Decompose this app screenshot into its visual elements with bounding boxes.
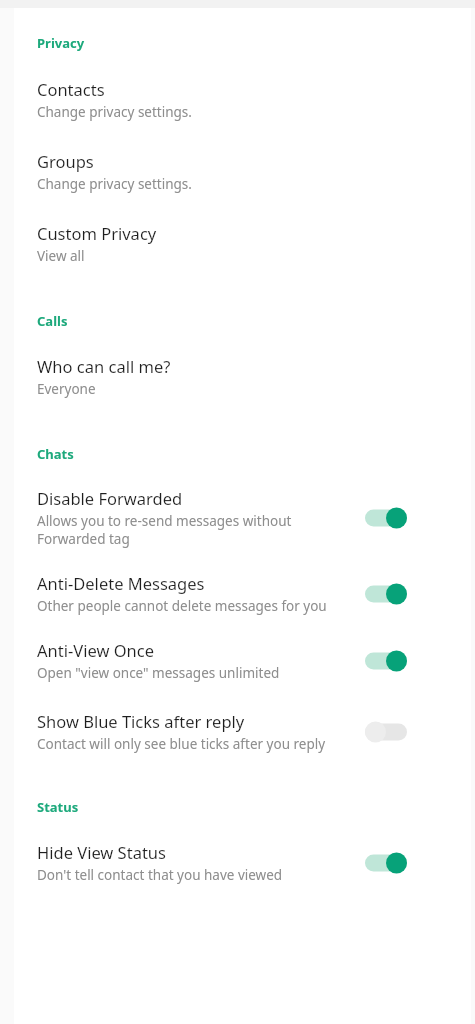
staticText: Change privacy settings. — [37, 103, 192, 121]
button[interactable]: Who can call me? — [0, 355, 475, 398]
staticText: Hide View Status — [37, 841, 166, 863]
staticText: Open "view once" messages unlimited — [37, 664, 280, 682]
button[interactable]: Anti-Delete Messages — [0, 572, 475, 615]
staticText: Privacy — [37, 34, 85, 52]
button[interactable]: Show Blue Ticks after reply — [0, 710, 475, 753]
staticText: Don't tell contact that you have viewed — [37, 866, 283, 884]
button[interactable]: Toggle off — [363, 717, 409, 747]
staticText: Other people cannot delete messages for … — [37, 597, 327, 615]
button[interactable]: Contacts — [0, 78, 475, 121]
button[interactable]: Toggle on — [363, 848, 409, 878]
staticText: Chats — [37, 445, 74, 463]
staticText: Contacts — [37, 78, 105, 100]
button[interactable]: Custom Privacy — [0, 222, 475, 265]
button[interactable]: Toggle on — [363, 646, 409, 676]
staticText: Disable Forwarded — [37, 487, 183, 509]
button[interactable]: Groups — [0, 150, 475, 193]
staticText: Everyone — [37, 380, 96, 398]
staticText: Status — [37, 798, 79, 816]
staticText: Contact will only see blue ticks after y… — [37, 735, 326, 753]
staticText: View all — [37, 247, 85, 265]
button[interactable]: Toggle on — [363, 503, 409, 533]
button[interactable]: Hide View Status — [0, 841, 475, 884]
staticText: Calls — [37, 312, 68, 330]
staticText: Allows you to re-send messages without F… — [37, 512, 349, 548]
staticText: Change privacy settings. — [37, 175, 192, 193]
button[interactable]: Anti-View Once — [0, 639, 475, 682]
staticText: Show Blue Ticks after reply — [37, 710, 245, 732]
button[interactable]: Toggle on — [363, 579, 409, 609]
button[interactable]: Disable Forwarded — [0, 487, 475, 548]
staticText: Custom Privacy — [37, 222, 157, 244]
staticText: Who can call me? — [37, 355, 171, 377]
staticText: Anti-Delete Messages — [37, 572, 205, 594]
staticText: Anti-View Once — [37, 639, 154, 661]
staticText: Groups — [37, 150, 94, 172]
